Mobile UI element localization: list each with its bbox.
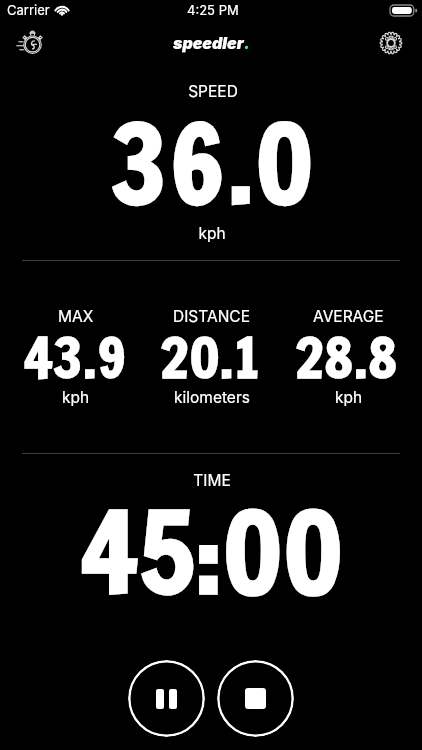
staticText: 43.9	[24, 319, 128, 396]
button[interactable]: Pause	[128, 660, 205, 737]
staticText: DISTANCE	[173, 307, 250, 326]
staticText: AVERAGE	[313, 307, 384, 326]
staticText: kph	[335, 388, 363, 407]
staticText: 4:25 PM	[187, 2, 239, 18]
button[interactable]: Stop	[217, 660, 294, 737]
staticText: 45:00	[81, 475, 344, 628]
staticText: kph	[62, 388, 90, 407]
staticText: 20.1	[160, 319, 261, 396]
staticText: 36.0	[111, 89, 318, 237]
staticText: kilometers	[174, 388, 250, 407]
staticText: MAX	[58, 307, 94, 326]
staticText: speedler	[173, 33, 244, 52]
staticText: 28.8	[295, 319, 399, 396]
staticText: Carrier	[7, 2, 50, 18]
button[interactable]: Stopwatch	[15, 26, 48, 59]
staticText: .	[244, 33, 250, 52]
staticText: TIME	[193, 471, 231, 490]
staticText: kph	[198, 224, 226, 243]
button[interactable]: Settings	[374, 26, 407, 59]
staticText: SPEED	[188, 82, 238, 101]
